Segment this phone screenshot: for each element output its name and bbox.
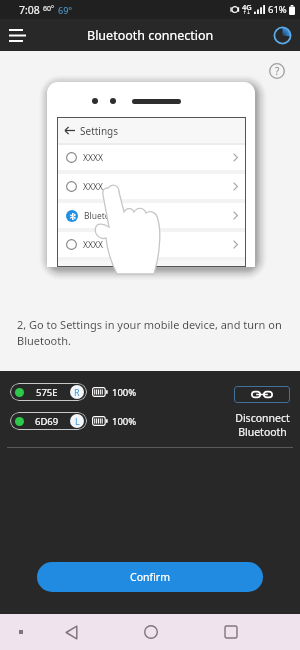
button[interactable]: Scanning in progress (270, 23, 294, 47)
staticText: XXXX (83, 181, 103, 193)
button[interactable]: Notifications (10, 621, 32, 643)
button[interactable]: 6D69 (10, 412, 87, 430)
staticText: XXXX (83, 152, 103, 164)
staticText: Bluetooth (84, 210, 124, 222)
staticText: ↑↓ (243, 10, 251, 15)
staticText: 2, Go to Settings in your mobile device,… (17, 317, 282, 348)
button[interactable]: Open navigation menu (2, 20, 32, 50)
staticText: XXXX (83, 239, 103, 251)
button[interactable]: Recent apps (218, 619, 244, 645)
staticText: ? (275, 64, 280, 78)
staticText: 61% (268, 3, 287, 16)
staticText: Settings (80, 124, 119, 138)
staticText: R (74, 386, 80, 398)
button[interactable]: Back (58, 619, 84, 645)
button[interactable]: 575E (10, 383, 87, 401)
staticText: 7:08 (19, 3, 40, 17)
staticText: 69° (58, 4, 73, 16)
staticText: 100% (112, 386, 137, 399)
staticText: 60° (43, 4, 55, 14)
button[interactable]: Disconnect Bluetooth (234, 386, 290, 439)
button[interactable]: Confirm (37, 562, 263, 592)
staticText: 575E (36, 386, 58, 399)
staticText: Disconnect Bluetooth (235, 411, 290, 439)
button[interactable]: Home (138, 619, 164, 645)
staticText: L (75, 415, 80, 427)
staticText: Confirm (130, 570, 170, 584)
button[interactable]: Help (266, 60, 288, 82)
staticText: 100% (112, 415, 137, 428)
staticText: Bluetooth connection (87, 27, 214, 44)
staticText: 4G (242, 2, 252, 12)
staticText: 6D69 (35, 415, 59, 428)
